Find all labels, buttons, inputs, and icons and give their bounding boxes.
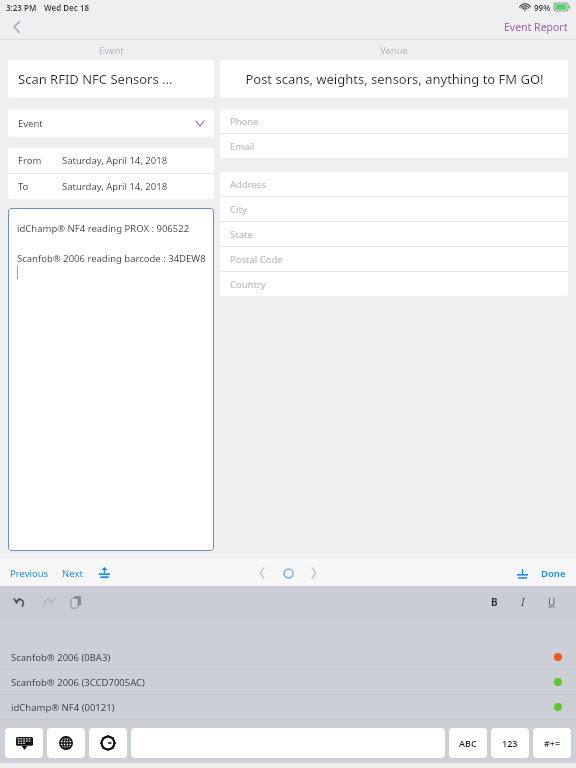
- button[interactable]: Hide keyboard: [5, 728, 43, 758]
- staticText: #+=: [544, 737, 561, 749]
- button[interactable]: Previous: [10, 567, 49, 580]
- staticText: Wed Dec 18: [44, 2, 90, 13]
- button[interactable]: idChamp® NF4 (00121): [0, 695, 576, 719]
- button[interactable]: B: [484, 592, 504, 612]
- button[interactable]: Phone: [220, 109, 568, 133]
- button[interactable]: 123: [491, 728, 529, 758]
- staticText: idChamp® NF4 reading PROX : 906522: [17, 222, 190, 235]
- button[interactable]: Insert: [95, 564, 113, 582]
- staticText: Scanfob® 2006 reading barcode : 34DEW8: [17, 252, 206, 265]
- staticText: B: [491, 595, 498, 609]
- button[interactable]: Undo: [10, 592, 30, 612]
- staticText: To: [18, 180, 62, 193]
- staticText: I: [521, 595, 525, 609]
- button[interactable]: Paste: [66, 592, 86, 612]
- staticText: Email: [230, 140, 255, 153]
- button[interactable]: ABC: [449, 728, 487, 758]
- staticText: Next: [62, 567, 83, 580]
- staticText: U: [548, 595, 556, 609]
- button[interactable]: Loading: [279, 564, 297, 582]
- staticText: Previous: [10, 567, 49, 580]
- button[interactable]: Language: [47, 728, 85, 758]
- button[interactable]: Add: [513, 564, 531, 582]
- button[interactable]: State: [220, 222, 568, 246]
- button[interactable]: Previous page: [253, 564, 271, 582]
- button[interactable]: #+=: [533, 728, 571, 758]
- button[interactable]: Email: [220, 134, 568, 158]
- staticText: Saturday, April 14, 2018: [62, 154, 168, 167]
- button[interactable]: Scanfob® 2006 (3CCD7005AC): [0, 670, 576, 694]
- staticText: Scanfob® 2006 (3CCD7005AC): [11, 676, 145, 689]
- staticText: Venue: [380, 44, 408, 57]
- staticText: Address: [230, 178, 266, 191]
- button[interactable]: Event: [8, 109, 214, 137]
- staticText: Scanfob® 2006 (0BA3): [11, 651, 111, 664]
- button[interactable]: Next page: [305, 564, 323, 582]
- staticText: Scan RFID NFC Sensors ...: [18, 70, 173, 88]
- staticText: Event: [18, 117, 43, 130]
- staticText: ABC: [459, 737, 477, 749]
- staticText: Post scans, weights, sensors, anything t…: [245, 70, 544, 88]
- button[interactable]: Country: [220, 272, 568, 296]
- button[interactable]: Next: [62, 567, 83, 580]
- button[interactable]: From: [8, 148, 214, 173]
- button[interactable]: idChamp® NF4 reading PROX : 906522: [8, 208, 214, 551]
- button[interactable]: Address: [220, 172, 568, 196]
- staticText: idChamp® NF4 (00121): [11, 701, 115, 714]
- staticText: State: [230, 228, 253, 241]
- staticText: Event: [99, 44, 124, 57]
- staticText: Postal Code: [230, 253, 283, 266]
- staticText: 3:23 PM: [6, 2, 37, 13]
- button[interactable]: City: [220, 197, 568, 221]
- staticText: Saturday, April 14, 2018: [62, 180, 168, 193]
- staticText: Country: [230, 278, 266, 291]
- button[interactable]: Back: [4, 14, 30, 40]
- button[interactable]: Postal Code: [220, 247, 568, 271]
- button[interactable]: Redo: [38, 592, 58, 612]
- button[interactable]: Settings: [89, 728, 127, 758]
- button[interactable]: Scan RFID NFC Sensors ...: [8, 60, 214, 98]
- button[interactable]: Scanfob® 2006 (0BA3): [0, 645, 576, 669]
- staticText: Done: [541, 567, 566, 580]
- button[interactable]: U: [542, 592, 562, 612]
- button[interactable]: I: [513, 592, 533, 612]
- staticText: City: [230, 203, 247, 216]
- staticText: Event Report: [504, 20, 568, 34]
- staticText: 99%: [534, 2, 551, 13]
- staticText: Phone: [230, 115, 259, 128]
- staticText: 123: [502, 737, 518, 749]
- button[interactable]: Post scans, weights, sensors, anything t…: [220, 60, 568, 98]
- button[interactable]: Done: [541, 567, 566, 580]
- button[interactable]: To: [8, 174, 214, 199]
- button[interactable]: Event Report: [504, 20, 568, 34]
- staticText: From: [18, 154, 62, 167]
